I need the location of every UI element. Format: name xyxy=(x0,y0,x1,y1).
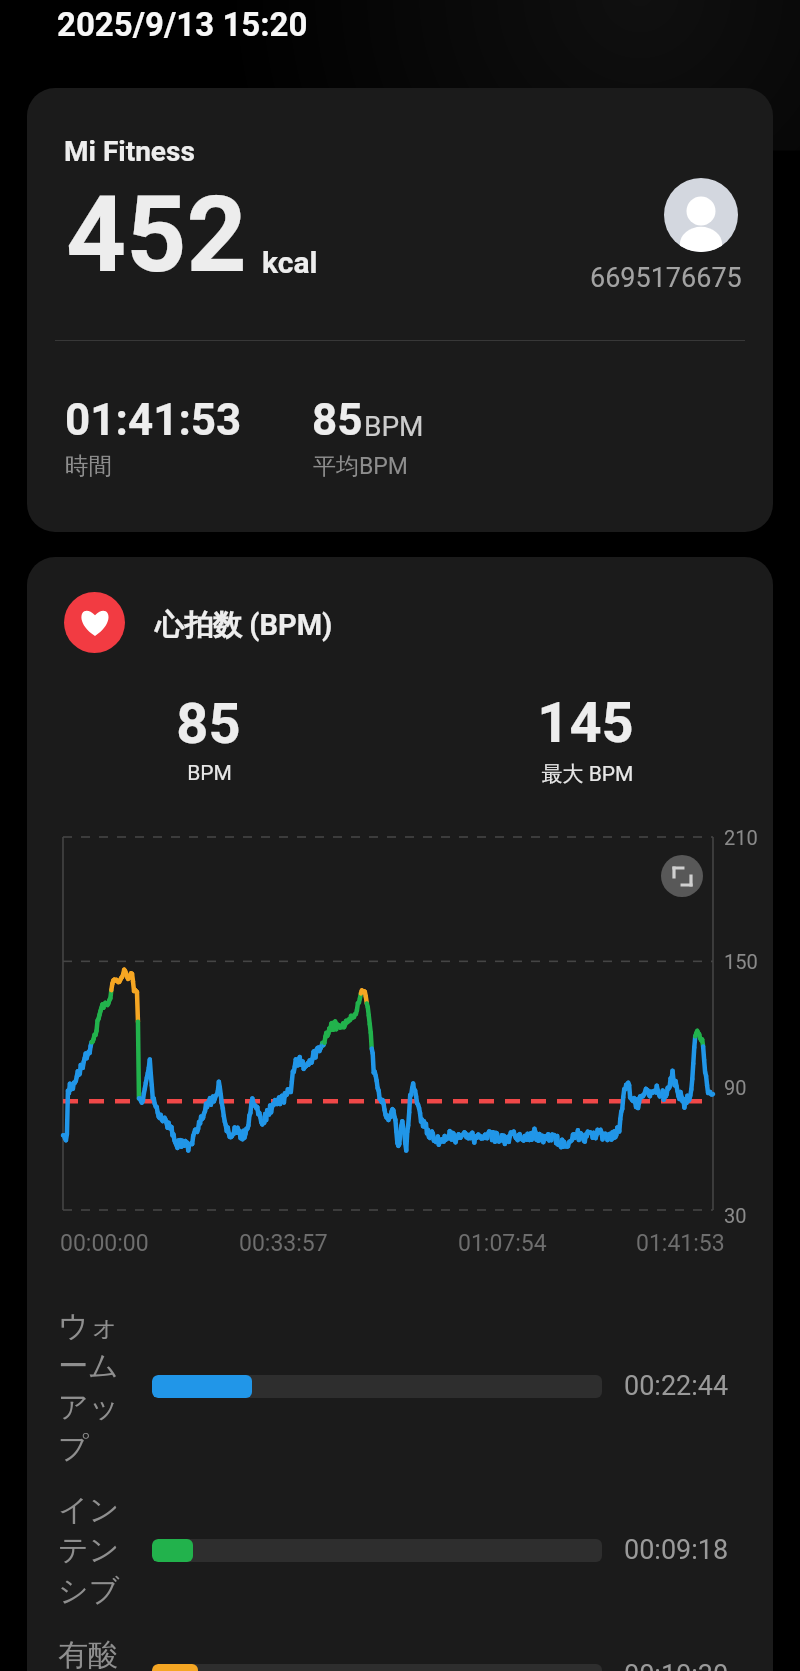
staticText: 30 xyxy=(724,1204,747,1227)
staticText: 150 xyxy=(724,950,758,973)
button[interactable] xyxy=(152,1664,602,1671)
staticText: 85 xyxy=(27,691,395,757)
staticText: 00:10:30 xyxy=(624,1659,729,1671)
staticText: 452 xyxy=(66,174,247,297)
staticText: kcal xyxy=(262,245,318,280)
staticText: 00:22:44 xyxy=(624,1370,729,1402)
staticText: 01:07:54 xyxy=(458,1230,547,1257)
staticText: BPM xyxy=(364,410,424,443)
staticText: 平均BPM xyxy=(313,452,408,481)
staticText: 6695176675 xyxy=(590,262,742,294)
staticText: 有酸素 xyxy=(58,1636,122,1671)
staticText: 2025/9/13 15:20 xyxy=(57,5,308,44)
staticText: 01:41:53 xyxy=(636,1230,725,1257)
staticText: BPM xyxy=(27,761,396,786)
staticText: Mi Fitness xyxy=(64,135,195,168)
button[interactable] xyxy=(152,1539,602,1562)
staticText: 145 xyxy=(399,690,772,756)
staticText: 90 xyxy=(724,1076,747,1099)
staticText: ウォームアップ xyxy=(58,1307,122,1467)
staticText: 210 xyxy=(724,826,758,849)
staticText: 最大 BPM xyxy=(401,761,773,787)
staticText: 心拍数 (BPM) xyxy=(155,607,333,644)
button[interactable]: Profile xyxy=(664,178,738,252)
button[interactable]: Expand chart xyxy=(661,855,703,897)
staticText: 00:00:00 xyxy=(60,1230,149,1257)
staticText: 01:41:53 xyxy=(65,394,242,446)
staticText: 時間 xyxy=(65,451,112,481)
staticText: 00:33:57 xyxy=(239,1230,328,1257)
staticText: 00:09:18 xyxy=(624,1534,729,1566)
staticText: インテンシブ xyxy=(58,1491,122,1610)
button[interactable] xyxy=(152,1375,602,1398)
staticText: 85 xyxy=(312,394,363,446)
